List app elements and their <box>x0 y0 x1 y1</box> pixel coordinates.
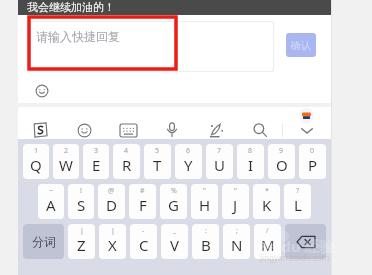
staticText: ! <box>80 186 82 196</box>
button[interactable]: 请输入快捷回复 <box>28 21 274 72</box>
staticText: B <box>201 235 211 255</box>
staticText: - <box>142 226 145 236</box>
staticText: * <box>265 186 269 196</box>
staticText: : <box>205 226 207 236</box>
button[interactable]: 0 <box>299 144 326 179</box>
staticText: 6 <box>186 146 191 156</box>
staticText: 1 <box>34 146 39 156</box>
staticText: # <box>140 186 145 196</box>
staticText: O <box>276 155 288 175</box>
button[interactable]: ? <box>284 184 311 219</box>
staticText: P <box>308 155 318 175</box>
button[interactable]: 4 <box>113 144 140 179</box>
staticText: T <box>153 155 162 175</box>
staticText: D <box>106 195 117 215</box>
button[interactable]: 7 <box>206 144 233 179</box>
staticText: A <box>46 195 56 215</box>
staticText: ~ <box>49 186 54 196</box>
staticText: 分词 <box>32 234 56 249</box>
button[interactable]: 1 <box>23 144 49 179</box>
staticText: 2 <box>64 146 69 156</box>
button[interactable]: : <box>192 224 219 259</box>
staticText: / <box>266 226 269 236</box>
button[interactable]: Backspace <box>285 224 326 259</box>
staticText: J <box>233 195 238 215</box>
staticText: 4 <box>124 146 129 156</box>
staticText: C <box>139 235 149 255</box>
staticText: jingyan.baidu.com <box>260 252 330 263</box>
button[interactable]: _ <box>161 224 188 259</box>
staticText: W <box>59 155 73 175</box>
staticText: 3 <box>94 146 99 156</box>
button[interactable]: @ <box>98 184 125 219</box>
staticText: | <box>111 226 115 236</box>
button[interactable]: 分词 <box>23 224 64 259</box>
staticText: U <box>214 155 225 175</box>
button[interactable]: Search <box>238 121 282 139</box>
staticText: L <box>294 195 302 215</box>
staticText: 我会继续加油的！ <box>27 0 115 14</box>
button[interactable]: * <box>253 184 280 219</box>
button[interactable]: ~ <box>38 184 64 219</box>
button[interactable]: 9 <box>268 144 295 179</box>
staticText: 确认 <box>291 39 311 52</box>
staticText: I <box>248 155 254 175</box>
button[interactable]: ! <box>68 184 94 219</box>
button[interactable]: 确认 <box>286 33 316 57</box>
button[interactable]: | <box>68 224 95 259</box>
button[interactable]: Voice <box>150 121 194 139</box>
staticText: M <box>261 235 275 255</box>
button[interactable]: Emoji <box>62 121 106 139</box>
staticText: % <box>171 186 177 196</box>
staticText: X <box>108 235 117 255</box>
staticText: Y <box>184 155 193 175</box>
button[interactable]: Sogou <box>18 121 62 139</box>
button[interactable]: Account <box>299 108 314 123</box>
button[interactable]: Handwriting <box>194 121 238 139</box>
staticText: 7 <box>217 146 222 156</box>
button[interactable]: " <box>222 184 249 219</box>
staticText: 9 <box>279 146 284 156</box>
staticText: 0 <box>310 146 315 156</box>
staticText: G <box>168 195 179 215</box>
staticText: ; <box>236 226 238 236</box>
staticText: S <box>77 195 86 215</box>
staticText: N <box>231 235 243 255</box>
button[interactable]: Emoji <box>32 81 52 101</box>
button[interactable]: 8 <box>237 144 264 179</box>
button[interactable]: 3 <box>83 144 109 179</box>
staticText: 5 <box>155 146 160 156</box>
button[interactable]: " <box>191 184 218 219</box>
button[interactable]: / <box>254 224 281 259</box>
staticText: " <box>234 186 237 196</box>
staticText: K <box>262 195 272 215</box>
staticText: H <box>199 195 211 215</box>
staticText: E <box>92 155 101 175</box>
button[interactable]: 2 <box>53 144 79 179</box>
staticText: @ <box>108 186 115 196</box>
button[interactable]: Collapse keyboard <box>283 121 331 139</box>
button[interactable]: % <box>160 184 187 219</box>
staticText: 请输入快捷回复 <box>36 29 120 44</box>
staticText: V <box>170 235 180 255</box>
staticText: | <box>80 226 84 236</box>
staticText: Z <box>77 235 86 255</box>
button[interactable]: - <box>130 224 157 259</box>
button[interactable]: ; <box>223 224 250 259</box>
staticText: " <box>203 186 206 196</box>
button[interactable]: 6 <box>175 144 202 179</box>
button[interactable]: | <box>99 224 126 259</box>
staticText: 8 <box>248 146 253 156</box>
staticText: ? <box>296 186 300 196</box>
staticText: _ <box>173 226 177 236</box>
staticText: F <box>139 195 147 215</box>
staticText: R <box>122 155 132 175</box>
button[interactable]: 5 <box>144 144 171 179</box>
staticText: Baidu 经验 <box>258 236 335 256</box>
button[interactable]: # <box>129 184 156 219</box>
staticText: Q <box>30 155 42 175</box>
button[interactable]: Keyboard <box>106 121 150 139</box>
